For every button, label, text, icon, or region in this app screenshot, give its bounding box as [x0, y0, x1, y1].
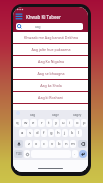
staticText: k — [71, 130, 74, 136]
button[interactable]: u — [60, 119, 66, 127]
button[interactable]: c — [41, 140, 48, 148]
staticText: f — [43, 130, 45, 136]
button[interactable]: Aag ki Roshani — [13, 92, 88, 103]
button[interactable]: Voice input — [16, 111, 20, 115]
staticText: w — [24, 120, 28, 126]
staticText: aag — [35, 25, 41, 29]
button[interactable]: z — [25, 140, 32, 148]
staticText: . — [74, 151, 76, 157]
staticText: r — [41, 120, 43, 126]
button[interactable]: v — [49, 140, 55, 148]
button[interactable]: w — [22, 119, 29, 127]
staticText: ?123 — [16, 152, 22, 156]
button[interactable]: g — [48, 129, 54, 137]
staticText: aag — [30, 113, 36, 117]
staticText: d — [36, 130, 39, 136]
button[interactable]: Open navigation menu — [15, 13, 24, 20]
button[interactable]: ?123 — [14, 150, 23, 158]
button[interactable]: x — [33, 140, 40, 148]
staticText: Aag jalte hue pukaarna — [31, 47, 71, 52]
staticText: m — [71, 141, 75, 147]
staticText: v — [51, 141, 54, 147]
button[interactable]: l — [76, 129, 82, 137]
staticText: a — [21, 130, 24, 136]
staticText: Aag Ko Nigalna — [38, 59, 64, 64]
staticText: aage — [52, 113, 59, 117]
staticText: Aag se bhaagna — [37, 71, 65, 76]
button[interactable]: Enter — [79, 150, 87, 158]
button[interactable]: s — [27, 129, 33, 137]
button[interactable]: Aag jalte hue pukaarna — [13, 44, 88, 55]
button[interactable]: . — [72, 150, 78, 158]
button[interactable]: Backspace — [78, 140, 87, 148]
button[interactable]: aag — [21, 110, 44, 120]
staticText: b — [58, 141, 61, 147]
staticText: o — [76, 120, 79, 126]
button[interactable]: e — [30, 119, 37, 127]
button[interactable]: p — [81, 119, 87, 127]
staticText: s — [29, 130, 32, 136]
staticText: Aag ka Shola — [40, 83, 62, 88]
button[interactable]: Emoji — [24, 150, 30, 158]
button[interactable]: Khwaab me Aag barasti Dekhna — [13, 32, 88, 43]
staticText: Khwab Ki Tabeer — [26, 14, 61, 20]
button[interactable]: Aag ka Shola — [13, 80, 88, 91]
staticText: g — [50, 130, 53, 136]
button[interactable]: d — [34, 129, 40, 137]
button[interactable]: aage — [44, 110, 66, 120]
staticText: i — [69, 120, 71, 126]
button[interactable]: i — [67, 119, 73, 127]
staticText: u — [62, 120, 65, 126]
staticText: Khwaab me Aag barasti Dekhna — [24, 35, 78, 40]
staticText: aagey — [73, 113, 82, 117]
staticText: y — [55, 120, 58, 126]
staticText: x — [35, 141, 38, 147]
staticText: l — [78, 130, 80, 136]
button[interactable]: a — [19, 129, 26, 137]
button[interactable]: y — [53, 119, 59, 127]
staticText: Aag ki Roshani — [38, 95, 63, 100]
button[interactable]: Aag Ko Nigalna — [13, 56, 88, 67]
button[interactable]: aag — [16, 23, 83, 30]
staticText: c — [43, 141, 46, 147]
staticText: t — [48, 120, 50, 126]
button[interactable]: n — [63, 140, 69, 148]
staticText: p — [83, 120, 86, 126]
button[interactable]: aagey — [66, 110, 88, 120]
staticText: n — [65, 141, 68, 147]
staticText: h — [57, 130, 60, 136]
staticText: q — [16, 120, 19, 126]
button[interactable]: f — [41, 129, 47, 137]
staticText: e — [32, 120, 35, 126]
button[interactable]: r — [38, 119, 45, 127]
button[interactable]: m — [70, 140, 76, 148]
button[interactable]: j — [62, 129, 68, 137]
button[interactable]: Aag se bhaagna — [13, 68, 88, 79]
staticText: z — [28, 141, 30, 147]
button[interactable]: t — [46, 119, 52, 127]
button[interactable]: Shift — [14, 140, 23, 148]
button[interactable]: k — [69, 129, 75, 137]
staticText: j — [64, 130, 66, 136]
button[interactable]: h — [55, 129, 61, 137]
button[interactable]: b — [56, 140, 62, 148]
button[interactable]: o — [74, 119, 80, 127]
button[interactable]: q — [14, 119, 21, 127]
